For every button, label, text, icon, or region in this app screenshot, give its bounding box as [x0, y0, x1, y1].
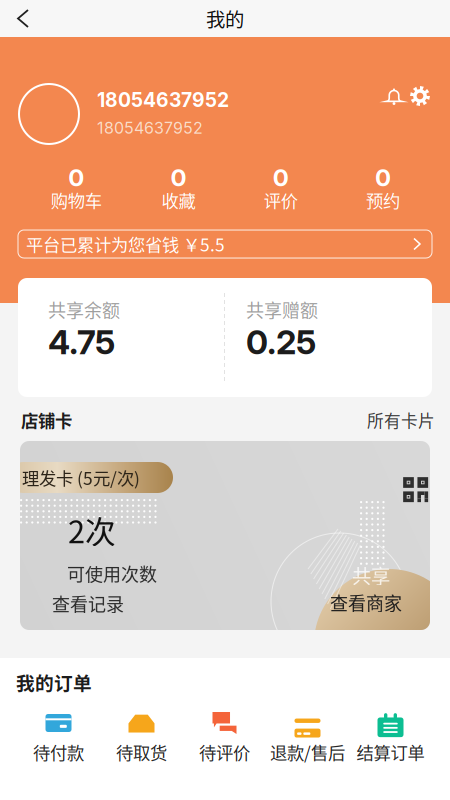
button[interactable]: 结算订单 [349, 710, 432, 761]
staticText: 退款/售后 [270, 739, 345, 765]
button[interactable]: 查看记录 [52, 594, 124, 613]
staticText: 查看记录 [52, 590, 124, 617]
staticText: 结算订单 [356, 739, 424, 765]
staticText: 可使用次数 [67, 560, 157, 587]
staticText: 18054637952 [97, 118, 203, 138]
button[interactable]: 所有卡片 [367, 411, 435, 429]
staticText: 2次 [68, 508, 116, 552]
staticText: 18054637952 [97, 88, 229, 112]
button[interactable]: 0 [127, 168, 229, 209]
staticText: 店铺卡 [21, 407, 72, 433]
staticText: 评价 [264, 187, 298, 213]
staticText: 待评价 [199, 739, 250, 765]
staticText: 预约 [366, 187, 400, 213]
staticText: 所有卡片 [367, 408, 435, 432]
button[interactable]: Back [0, 0, 46, 37]
staticText: 0 [375, 163, 391, 192]
staticText: 待付款 [33, 739, 84, 765]
staticText: 查看商家 [330, 589, 402, 616]
button[interactable]: Show QR code [396, 470, 421, 495]
staticText: 共享赠额 [246, 296, 318, 323]
button[interactable]: 平台已累计为您省钱 ￥5.5 [18, 230, 432, 258]
staticText: 理发卡 (5元/次) [22, 465, 140, 490]
button[interactable]: 待付款 [17, 710, 100, 761]
staticText: 收藏 [161, 187, 195, 213]
staticText: 我的 [206, 4, 244, 32]
button[interactable]: Settings [404, 80, 436, 112]
button[interactable]: 查看商家 [330, 593, 402, 612]
button[interactable]: 0 [332, 168, 434, 209]
staticText: 待取货 [116, 739, 167, 765]
staticText: 共享 [352, 561, 390, 589]
button[interactable]: 待取货 [100, 710, 183, 761]
button[interactable]: 待评价 [183, 710, 266, 761]
button[interactable]: 0 [25, 168, 127, 209]
staticText: 0 [68, 163, 84, 192]
staticText: 平台已累计为您省钱 ￥5.5 [26, 231, 225, 257]
staticText: 0 [170, 163, 186, 192]
button[interactable]: 0 [229, 168, 332, 209]
button[interactable]: 退款/售后 [266, 710, 349, 761]
staticText: 0 [273, 163, 289, 192]
staticText: 0.25 [246, 322, 316, 362]
staticText: 我的订单 [16, 668, 92, 695]
button[interactable]: Notifications [378, 81, 410, 113]
staticText: 4.75 [48, 322, 115, 362]
staticText: 共享余额 [48, 296, 120, 323]
staticText: 购物车 [51, 187, 102, 213]
